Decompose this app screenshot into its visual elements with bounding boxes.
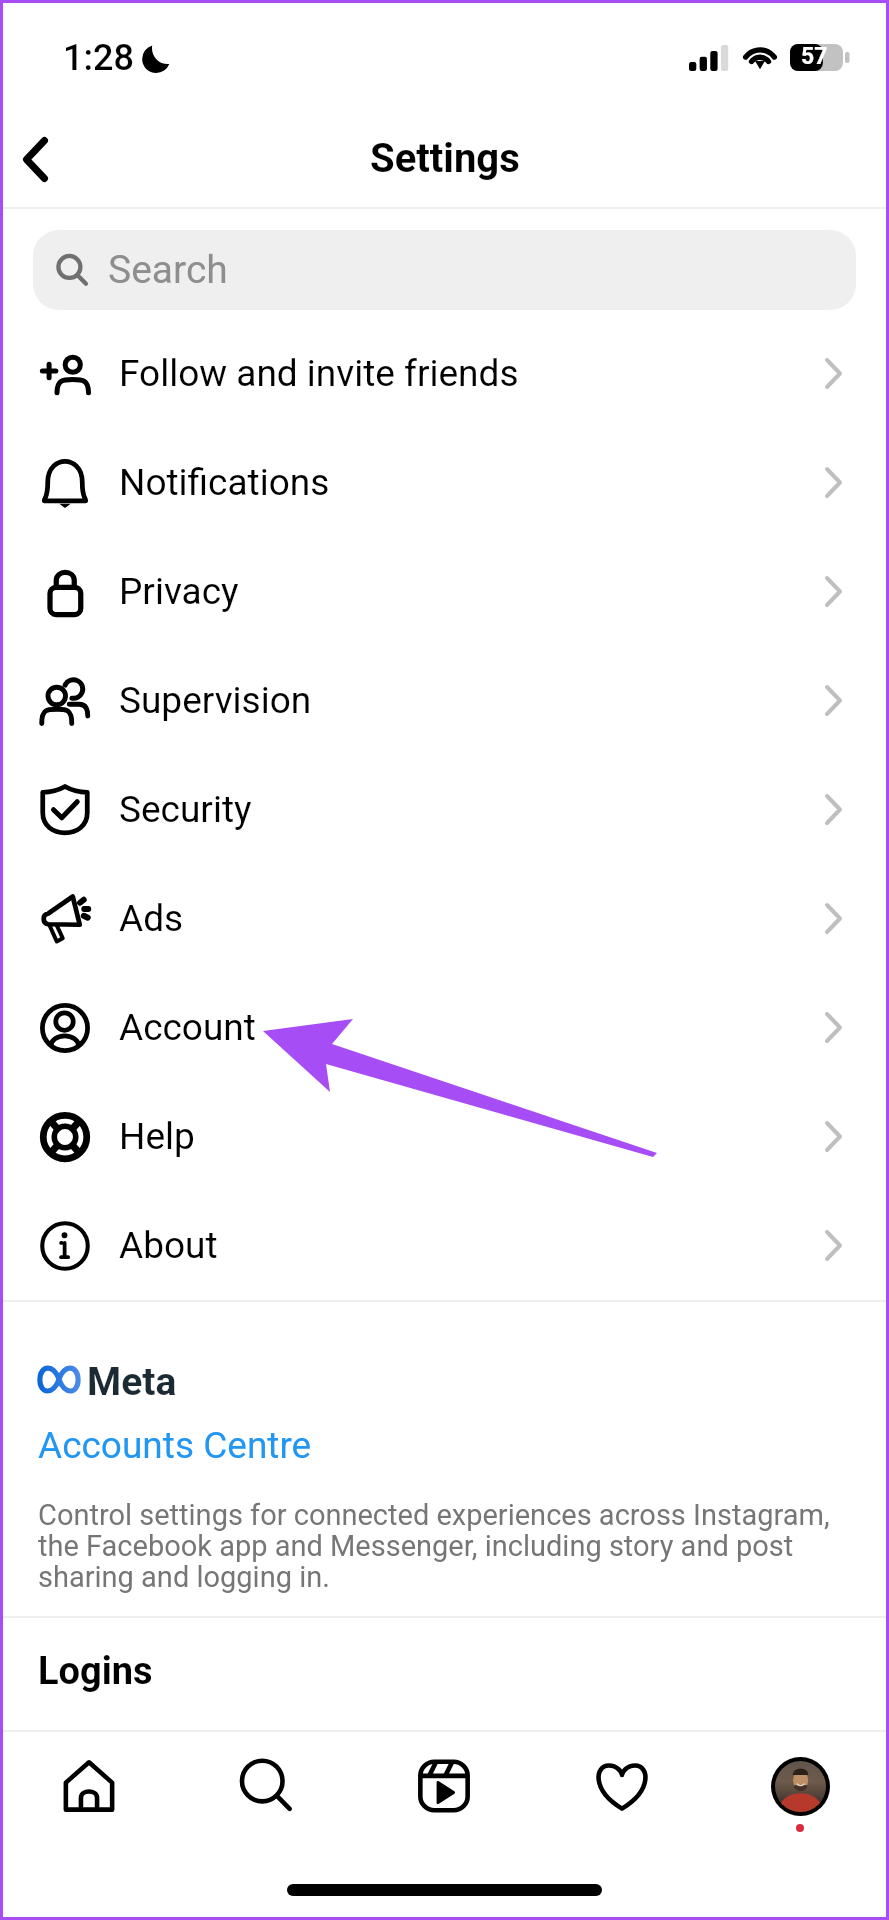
button[interactable]: Help (0, 1082, 889, 1191)
button[interactable]: Account (0, 973, 889, 1082)
staticText: Ads (119, 897, 184, 940)
button[interactable]: Back (0, 112, 71, 206)
button[interactable]: Supervision (0, 646, 889, 755)
button[interactable]: Profile (711, 1732, 889, 1840)
button[interactable]: Search (177, 1732, 355, 1840)
staticText: Security (119, 788, 252, 831)
staticText: Help (119, 1115, 195, 1158)
button[interactable]: Privacy (0, 537, 889, 646)
staticText: Account (119, 1006, 256, 1049)
button[interactable]: Accounts Centre (38, 1424, 312, 1467)
staticText: Meta (87, 1359, 177, 1405)
button[interactable]: Notifications (0, 428, 889, 537)
button[interactable]: Ads (0, 864, 889, 973)
staticText: Logins (38, 1649, 153, 1694)
staticText: Control settings for connected experienc… (38, 1498, 867, 1594)
button[interactable]: About (0, 1191, 889, 1300)
staticText: Follow and invite friends (119, 352, 519, 395)
button[interactable]: Home (0, 1732, 177, 1840)
button[interactable]: Likes (533, 1732, 711, 1840)
button[interactable]: Reels (355, 1732, 533, 1840)
staticText: Notifications (119, 461, 330, 504)
staticText: Privacy (119, 570, 239, 613)
staticText: 57 (801, 43, 828, 70)
staticText: 1:28 (63, 37, 134, 79)
button[interactable]: Search (33, 230, 856, 310)
button[interactable]: Security (0, 755, 889, 864)
staticText: Supervision (119, 679, 312, 722)
staticText: Settings (370, 135, 520, 182)
button[interactable]: Follow and invite friends (0, 319, 889, 428)
staticText: Search (108, 247, 228, 293)
staticText: About (119, 1224, 218, 1267)
